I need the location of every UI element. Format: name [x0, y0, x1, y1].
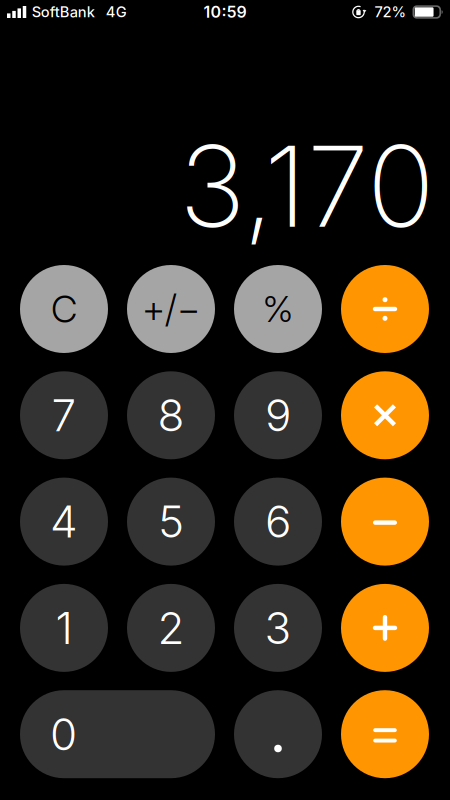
staticText: 4	[50, 495, 78, 548]
button[interactable]: 5	[127, 478, 215, 566]
button[interactable]: 7	[20, 371, 108, 459]
button[interactable]: 2	[127, 584, 215, 672]
staticText: 72%	[374, 3, 406, 21]
staticText: 7	[51, 389, 76, 442]
staticText: +/−	[142, 286, 200, 332]
button[interactable]: C	[20, 265, 108, 353]
staticText: 5	[158, 495, 184, 548]
button[interactable]: Divide	[341, 265, 429, 353]
staticText: 1	[55, 601, 72, 654]
button[interactable]: %	[234, 265, 322, 353]
staticText: 0	[50, 708, 77, 761]
staticText: C	[51, 286, 77, 332]
button[interactable]: 3	[234, 584, 322, 672]
staticText: SoftBank	[32, 3, 95, 21]
staticText: 3,170	[179, 118, 435, 254]
staticText: 4G	[106, 3, 127, 21]
button[interactable]: Decimal point	[234, 690, 322, 778]
button[interactable]: Minus	[341, 478, 429, 566]
staticText: 6	[265, 495, 291, 548]
staticText: 8	[157, 389, 184, 442]
button[interactable]: Equals	[341, 690, 429, 778]
button[interactable]: 8	[127, 371, 215, 459]
button[interactable]: +/−	[127, 265, 215, 353]
staticText: 10:59	[203, 2, 246, 22]
button[interactable]: 6	[234, 478, 322, 566]
staticText: 3	[264, 601, 291, 654]
button[interactable]: Multiply	[341, 371, 429, 459]
staticText: %	[262, 287, 293, 331]
button[interactable]: 0	[20, 690, 215, 778]
button[interactable]: 9	[234, 371, 322, 459]
button[interactable]: 4	[20, 478, 108, 566]
staticText: 9	[265, 389, 291, 442]
button[interactable]: 1	[20, 584, 108, 672]
staticText: 2	[157, 601, 184, 654]
button[interactable]: Plus	[341, 584, 429, 672]
